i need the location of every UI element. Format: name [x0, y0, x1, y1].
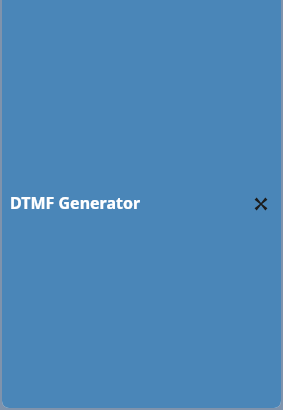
staticText: DTMF Generator	[10, 192, 141, 214]
button[interactable]: Close	[247, 190, 275, 218]
